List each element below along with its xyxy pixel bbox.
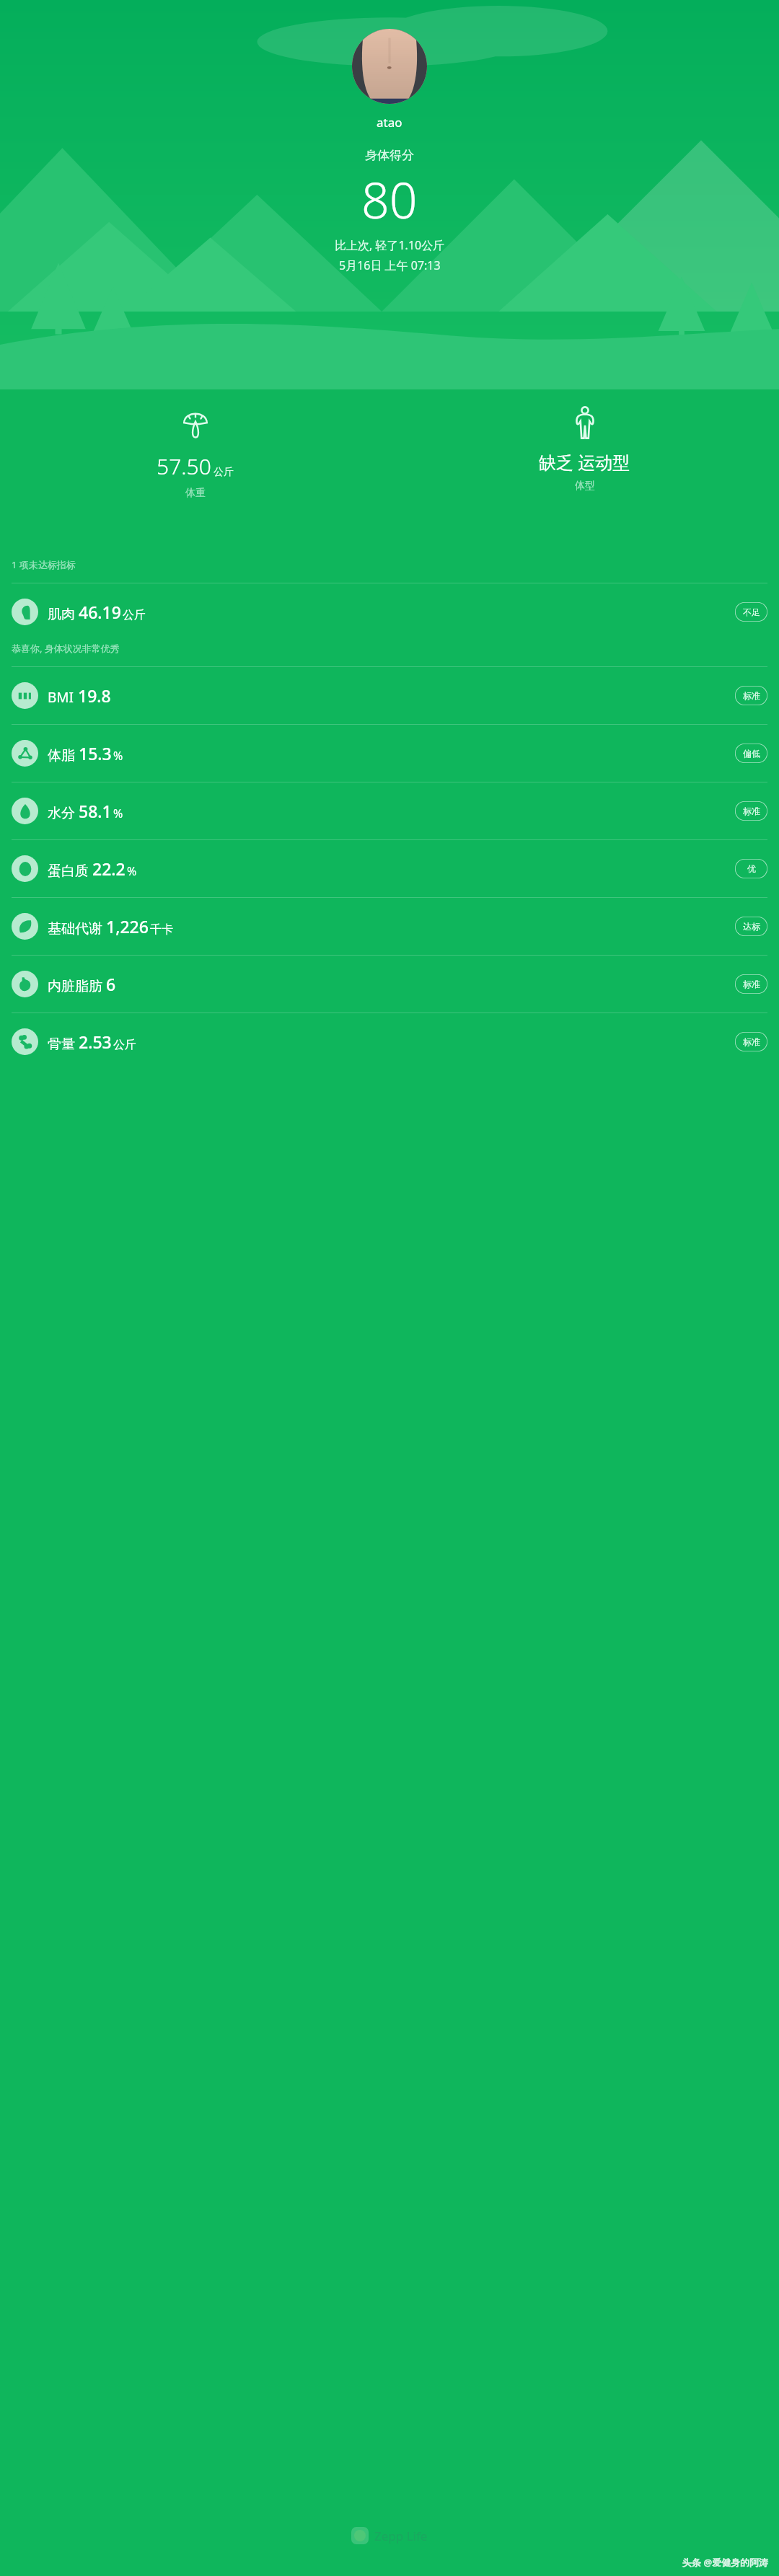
staticText: 偏低 (743, 748, 760, 759)
staticText: 1 项未达标指标 (12, 558, 76, 571)
staticText: 不足 (743, 606, 760, 617)
staticText: 基础代谢 (48, 920, 102, 938)
staticText: 公斤 (123, 608, 146, 622)
staticText: 58.1 (79, 800, 112, 822)
button[interactable]: 偏低 (735, 744, 767, 763)
button[interactable]: 标准 (735, 974, 767, 994)
staticText: 46.19 (79, 601, 121, 623)
button[interactable]: 标准 (735, 686, 767, 705)
button[interactable]: 57.50 (0, 389, 389, 534)
staticText: 比上次, 轻了1.10公斤 (335, 237, 445, 253)
staticText: 57.50 (157, 451, 211, 481)
staticText: 标准 (743, 979, 760, 989)
staticText: 2.53 (79, 1031, 112, 1053)
button[interactable]: 骨量 (0, 1013, 779, 1070)
button[interactable]: 达标 (735, 917, 767, 936)
staticText: 骨量 (48, 1036, 75, 1053)
staticText: BMI (48, 688, 74, 707)
button[interactable]: 缺乏 运动型 (389, 389, 779, 534)
staticText: 达标 (743, 921, 760, 932)
staticText: 22.2 (92, 857, 126, 880)
button[interactable]: 标准 (735, 801, 767, 821)
staticText: 公斤 (214, 466, 234, 479)
staticText: 缺乏 运动型 (539, 450, 630, 474)
staticText: atao (377, 114, 402, 131)
staticText: % (113, 748, 123, 764)
button[interactable]: 蛋白质 (0, 840, 779, 897)
staticText: 肌肉 (48, 606, 75, 623)
staticText: 身体得分 (365, 148, 414, 163)
button[interactable]: 水分 (0, 782, 779, 839)
staticText: Zepp Life (374, 2528, 428, 2544)
staticText: 内脏脂肪 (48, 978, 102, 995)
staticText: 80 (361, 166, 418, 233)
button[interactable]: Profile photo (352, 29, 427, 104)
staticText: 标准 (743, 806, 760, 816)
staticText: 标准 (743, 690, 760, 701)
button[interactable]: 肌肉 (0, 583, 779, 640)
staticText: 15.3 (79, 742, 112, 764)
staticText: 公斤 (113, 1038, 136, 1052)
staticText: 头条 @爱健身的阿涛 (682, 2556, 769, 2569)
button[interactable]: Zepp Life (351, 2527, 428, 2544)
staticText: 1,226 (106, 915, 149, 938)
staticText: 体脂 (48, 747, 75, 764)
button[interactable]: 不足 (735, 602, 767, 622)
staticText: 标准 (743, 1036, 760, 1047)
button[interactable]: BMI (0, 667, 779, 724)
staticText: 千卡 (150, 922, 173, 937)
staticText: 优 (747, 863, 756, 874)
staticText: 体重 (185, 487, 206, 500)
staticText: 蛋白质 (48, 863, 89, 880)
button[interactable]: 内脏脂肪 (0, 956, 779, 1013)
staticText: 6 (106, 973, 116, 995)
staticText: 19.8 (78, 684, 111, 707)
staticText: 恭喜你, 身体状况非常优秀 (12, 642, 120, 655)
button[interactable]: 优 (735, 859, 767, 878)
button[interactable]: 基础代谢 (0, 898, 779, 955)
button[interactable]: 标准 (735, 1032, 767, 1051)
staticText: % (113, 806, 123, 821)
staticText: 体型 (575, 480, 595, 493)
staticText: 水分 (48, 805, 75, 822)
staticText: 5月16日 上午 07:13 (339, 257, 441, 273)
staticText: % (127, 863, 137, 879)
button[interactable]: 体脂 (0, 725, 779, 782)
